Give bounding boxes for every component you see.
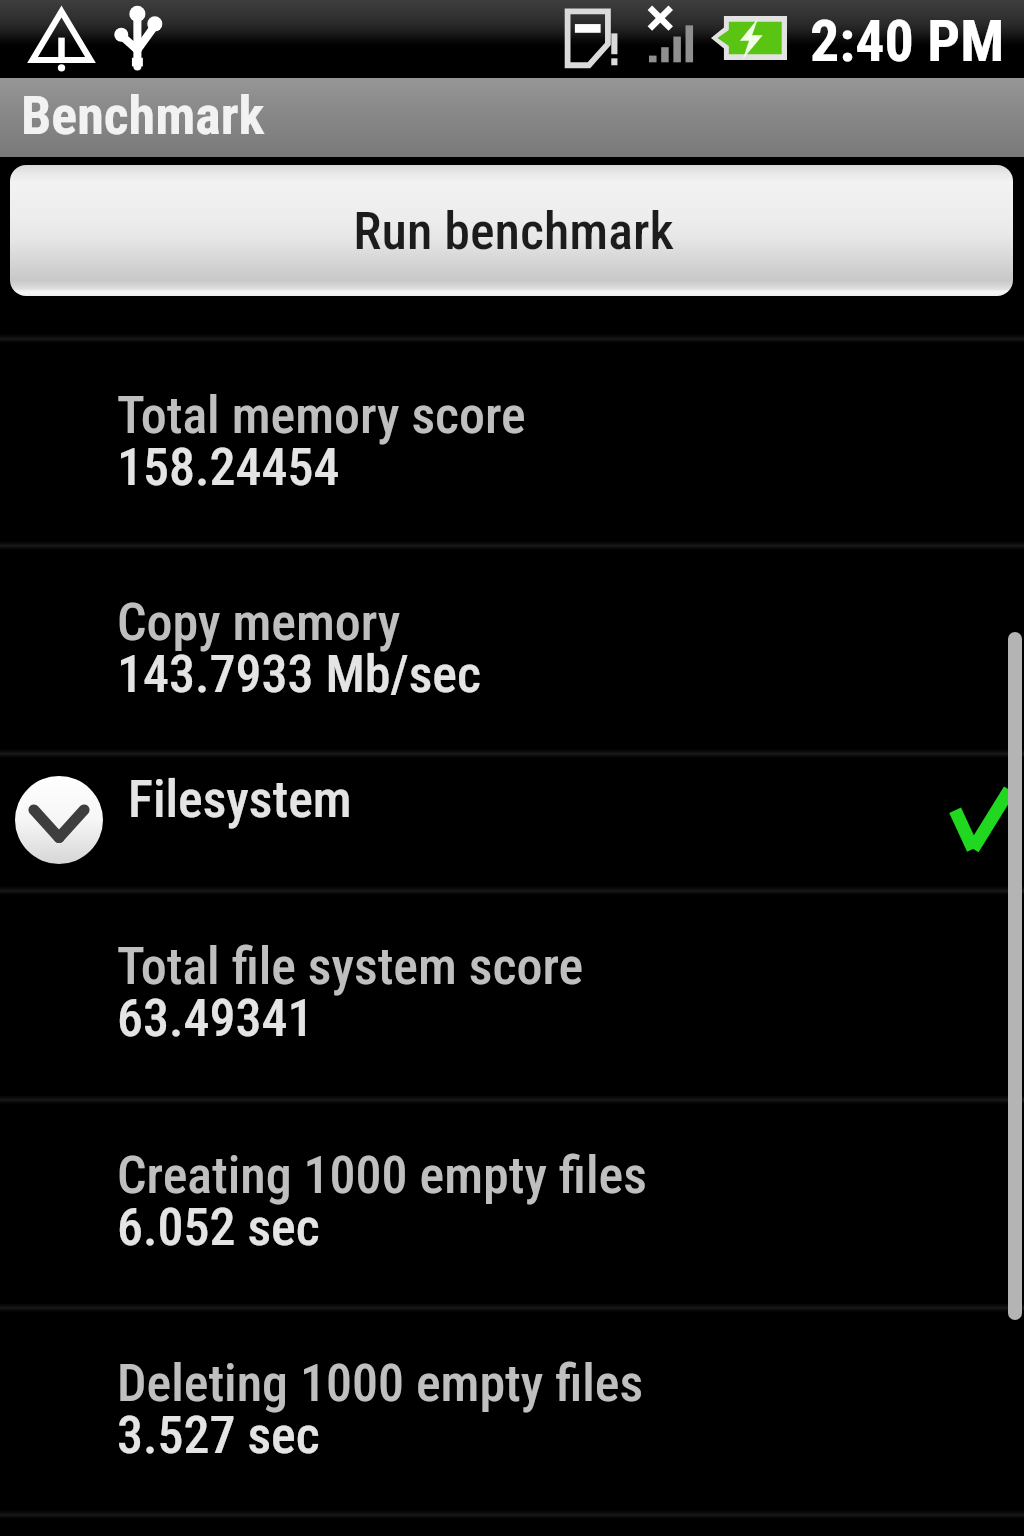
- staticText: 158.24454: [117, 437, 340, 498]
- staticText: 3.527 sec: [117, 1405, 320, 1466]
- other: SD card warning: [562, 9, 618, 67]
- other: USB connected: [114, 5, 166, 71]
- staticText: 63.49341: [117, 988, 314, 1049]
- button[interactable]: Total memory score: [0, 339, 1024, 546]
- other: Warning: [29, 8, 94, 71]
- staticText: Filesystem: [128, 769, 352, 830]
- button[interactable]: Collapse Filesystem section: [15, 776, 103, 864]
- button[interactable]: Total file system score: [0, 890, 1024, 1099]
- staticText: Total file system score: [117, 936, 584, 997]
- other: Battery charging: [711, 16, 787, 60]
- staticText: Run benchmark: [353, 201, 674, 262]
- staticText: Total memory score: [117, 385, 526, 446]
- staticText: 2:40 PM: [810, 7, 1005, 75]
- staticText: 143.7933 Mb/sec: [117, 644, 481, 705]
- staticText: Copy memory: [117, 592, 401, 653]
- staticText: Creating 1000 empty files: [117, 1145, 647, 1206]
- staticText: 6.052 sec: [117, 1197, 320, 1258]
- button[interactable]: Creating 1000 empty files: [0, 1099, 1024, 1307]
- staticText: Deleting 1000 empty files: [117, 1353, 644, 1414]
- staticText: Benchmark: [21, 84, 265, 147]
- button[interactable]: Run benchmark: [10, 165, 1013, 296]
- button[interactable]: Deleting 1000 empty files: [0, 1307, 1024, 1514]
- button[interactable]: Copy memory: [0, 546, 1024, 753]
- button[interactable]: Collapse Filesystem section: [0, 753, 1024, 890]
- other: Completed: [950, 783, 1014, 851]
